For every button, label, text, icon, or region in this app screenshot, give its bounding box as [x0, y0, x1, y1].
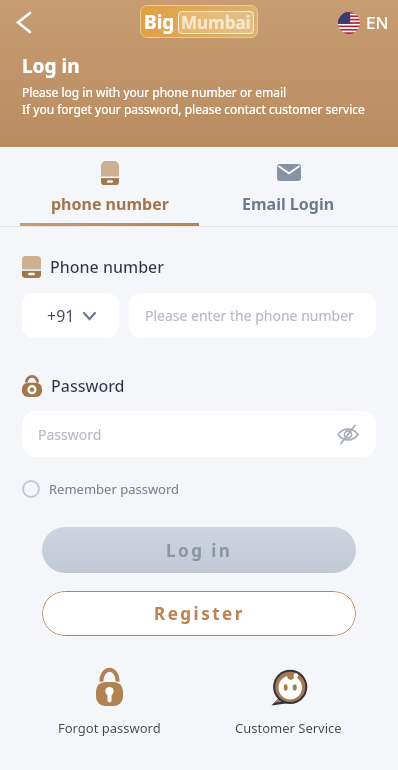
staticText: Log in [166, 539, 233, 562]
staticText: Phone number [50, 256, 165, 278]
staticText: Big [144, 9, 175, 35]
button[interactable]: phone number [20, 161, 199, 226]
button[interactable]: Register [42, 591, 356, 636]
staticText: Register [154, 602, 245, 625]
button[interactable]: EN [338, 11, 389, 34]
button[interactable]: Please enter the phone number [129, 293, 376, 338]
staticText: Mumbai [181, 11, 251, 34]
button[interactable] [8, 6, 40, 38]
button[interactable]: Remember password [22, 480, 180, 498]
button[interactable]: +91 [22, 293, 119, 338]
staticText: Please enter the phone number [145, 306, 354, 325]
staticText: Remember password [49, 480, 180, 498]
button[interactable]: Email Login [199, 161, 378, 215]
button[interactable]: Log in [42, 527, 356, 573]
staticText: Forgot password [58, 719, 161, 737]
staticText: Please log in with your phone number or … [22, 84, 287, 100]
staticText: If you forget your password, please cont… [22, 101, 365, 117]
staticText: phone number [51, 193, 169, 215]
button[interactable]: Customer Service [199, 662, 378, 737]
staticText: Email Login [242, 193, 335, 215]
staticText: Password [38, 425, 102, 444]
staticText: EN [366, 11, 389, 34]
staticText: Customer Service [235, 719, 342, 737]
staticText: Log in [22, 53, 80, 79]
button[interactable]: Password [22, 411, 376, 457]
staticText: Password [51, 375, 125, 397]
staticText: +91 [47, 305, 75, 327]
button[interactable]: Forgot password [20, 662, 199, 737]
